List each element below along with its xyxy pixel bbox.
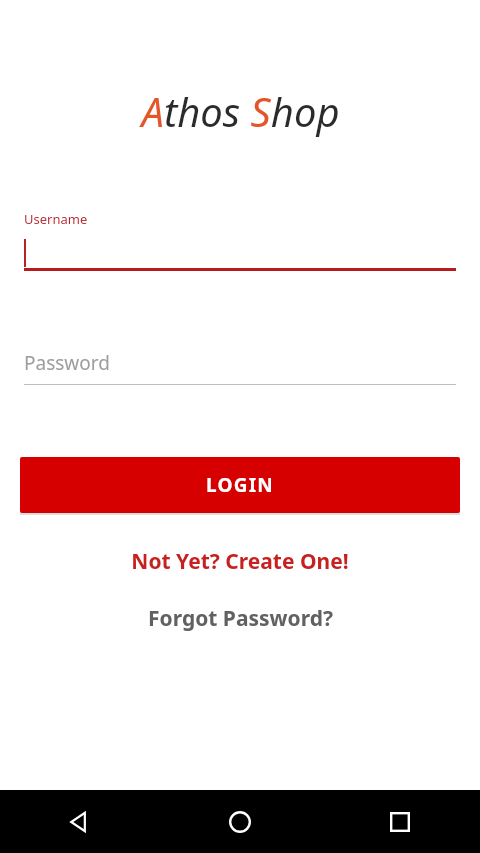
staticText: LOGIN <box>206 472 274 498</box>
button[interactable]: Username <box>24 210 456 271</box>
button[interactable]: Not Yet? Create One! <box>119 543 361 580</box>
button[interactable]: Home <box>160 790 320 853</box>
staticText: Username <box>24 210 88 228</box>
staticText: Forgot Password? <box>148 604 333 633</box>
button[interactable]: Password <box>24 349 456 385</box>
button[interactable]: Forgot Password? <box>136 600 345 637</box>
button[interactable]: Recent apps <box>320 790 480 853</box>
staticText: Not Yet? Create One! <box>131 547 349 576</box>
staticText: Password <box>24 350 110 376</box>
button[interactable]: LOGIN <box>20 457 460 513</box>
button[interactable]: Back <box>0 790 160 853</box>
staticText: Athos Shop <box>141 84 340 138</box>
